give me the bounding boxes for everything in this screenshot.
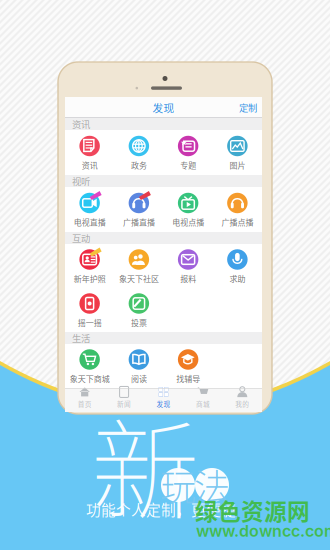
staticText: 新年护照 [74, 273, 106, 284]
button[interactable]: 我的 [223, 388, 262, 412]
staticText: 报料 [180, 273, 196, 284]
staticText: 首页 [78, 399, 92, 409]
button[interactable]: 新闻 [104, 388, 144, 412]
staticText: 玩 [160, 459, 196, 511]
staticText: 功能个人定制，更便捷 [86, 498, 236, 520]
staticText: 生活 [72, 331, 90, 345]
button[interactable]: 商城 [183, 388, 223, 412]
staticText: 新 [90, 384, 199, 542]
button[interactable]: 图片 [213, 130, 262, 175]
button[interactable]: 象天下商城 [65, 344, 114, 388]
button[interactable]: 找辅导 [163, 344, 213, 388]
staticText: 广播直播 [123, 216, 155, 228]
button[interactable]: 广播点播 [213, 187, 262, 232]
staticText: 象天下商城 [70, 373, 110, 384]
button[interactable]: 电视点播 [163, 187, 213, 232]
button[interactable]: 象天下社区 [114, 244, 163, 288]
button[interactable]: 定制 [239, 101, 262, 114]
staticText: 定制 [239, 101, 257, 114]
staticText: 法 [194, 459, 230, 511]
button[interactable]: 求助 [213, 244, 262, 288]
button[interactable]: 发现 [144, 388, 183, 412]
staticText: 图片 [229, 159, 245, 171]
staticText: 资讯 [72, 117, 90, 131]
staticText: 视听 [72, 174, 90, 188]
button[interactable]: 阅读 [114, 344, 163, 388]
button[interactable]: 报料 [163, 244, 213, 288]
button[interactable]: 电视直播 [65, 187, 114, 232]
staticText: 互动 [72, 231, 90, 245]
staticText: 找辅导 [176, 373, 200, 384]
staticText: www.downcc.com [196, 521, 330, 541]
staticText: 阅读 [131, 373, 147, 384]
staticText: 求助 [229, 273, 245, 284]
staticText: 新闻 [117, 399, 131, 409]
button[interactable]: 投票 [114, 288, 163, 332]
staticText: 资讯 [82, 159, 98, 171]
staticText: 电视点播 [172, 216, 204, 228]
button[interactable]: 资讯 [65, 130, 114, 175]
staticText: 广播点播 [221, 216, 253, 228]
staticText: 发现 [152, 100, 174, 115]
button[interactable]: 首页 [65, 388, 104, 412]
button[interactable]: 专题 [163, 130, 213, 175]
staticText: 电视直播 [74, 216, 106, 228]
staticText: 发现 [156, 399, 170, 409]
staticText: 投票 [131, 317, 147, 328]
button[interactable]: 发现 [152, 100, 174, 115]
staticText: 专题 [180, 159, 196, 171]
staticText: 象天下社区 [119, 273, 159, 284]
staticText: 政务 [131, 159, 147, 171]
button[interactable]: 政务 [114, 130, 163, 175]
button[interactable]: 新年护照 [65, 244, 114, 288]
button[interactable]: 广播直播 [114, 187, 163, 232]
staticText: 绿色资源网 [195, 494, 310, 526]
staticText: 摇一摇 [78, 317, 102, 328]
staticText: 我的 [235, 399, 249, 409]
staticText: 商城 [196, 399, 210, 409]
button[interactable]: 摇一摇 [65, 288, 114, 332]
